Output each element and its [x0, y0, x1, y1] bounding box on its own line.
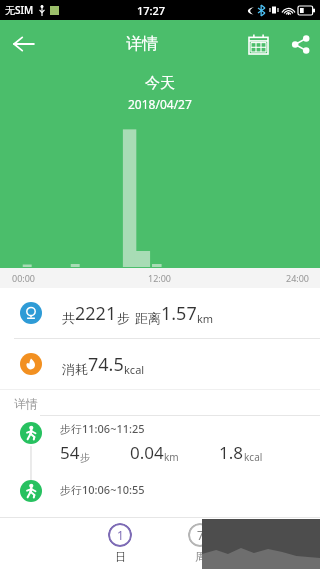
- staticText: 步: [80, 451, 90, 464]
- button[interactable]: 1: [80, 517, 160, 569]
- staticText: 1.8: [219, 441, 244, 464]
- staticText: 54: [60, 441, 80, 464]
- staticText: km: [164, 450, 179, 464]
- staticText: 1.57: [161, 301, 197, 326]
- staticText: kcal: [244, 450, 263, 464]
- staticText: 12:00: [148, 272, 172, 284]
- staticText: 0.04: [130, 441, 164, 464]
- staticText: 24:00: [286, 272, 310, 284]
- staticText: 17:27: [137, 3, 166, 18]
- staticText: 共: [62, 310, 75, 326]
- staticText: 周: [195, 550, 206, 564]
- staticText: km: [197, 311, 214, 326]
- staticText: 2018/04/27: [128, 96, 192, 112]
- staticText: 无SIM: [5, 3, 34, 17]
- staticText: 详情: [126, 34, 158, 54]
- button[interactable]: 7: [160, 517, 240, 569]
- button[interactable]: Calendar: [236, 22, 280, 66]
- staticText: kcal: [124, 362, 145, 377]
- staticText: 消耗: [62, 361, 88, 377]
- button[interactable]: 共: [0, 288, 320, 338]
- staticText: 00:00: [12, 272, 36, 284]
- staticText: 距离: [135, 310, 161, 326]
- button[interactable]: 消耗: [0, 339, 320, 389]
- staticText: 2221: [75, 301, 117, 326]
- staticText: 步: [117, 310, 130, 326]
- staticText: 详情: [14, 396, 38, 411]
- button[interactable]: 步行10:06~10:55: [0, 478, 320, 508]
- staticText: 步行11:06~11:25: [60, 421, 145, 436]
- button[interactable]: Share: [280, 24, 320, 64]
- staticText: 1: [117, 527, 124, 543]
- button[interactable]: 步行11:06~11:25: [0, 416, 320, 478]
- staticText: 日: [115, 550, 126, 564]
- staticText: 74.5: [88, 352, 124, 377]
- staticText: 今天: [145, 74, 175, 93]
- button[interactable]: Back: [0, 20, 48, 68]
- staticText: 步行10:06~10:55: [60, 482, 145, 497]
- staticText: 7: [197, 527, 204, 543]
